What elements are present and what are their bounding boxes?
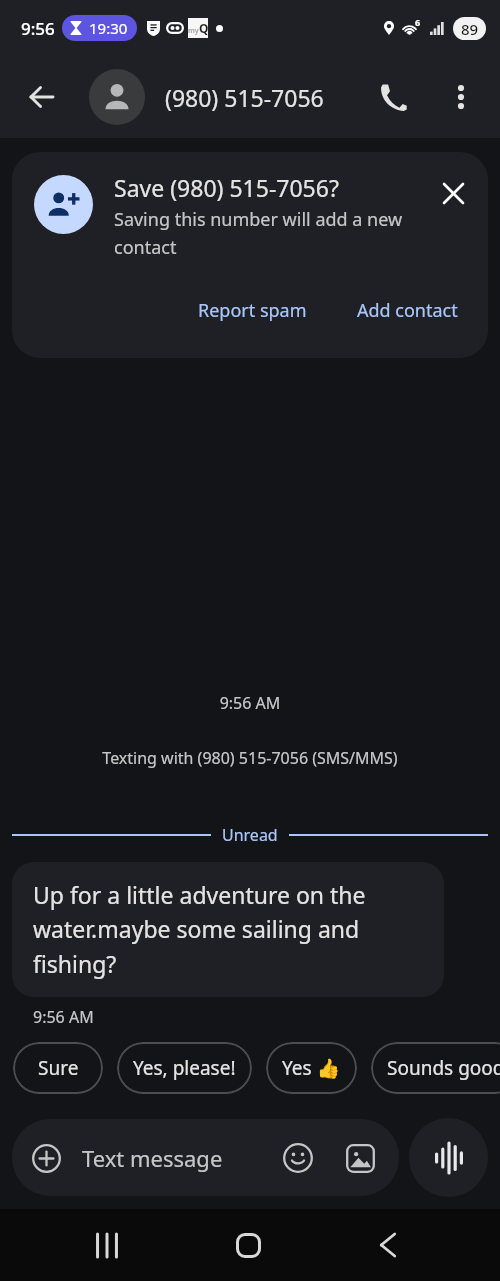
staticText: Saving this number will add a new contac… (114, 207, 428, 259)
button[interactable]: Emoji (277, 1137, 319, 1179)
button[interactable]: Call (369, 73, 417, 121)
button[interactable]: Sounds good (371, 1042, 500, 1094)
button[interactable]: Yes 👍 (266, 1042, 357, 1094)
staticText: Texting with (980) 515-7056 (SMS/MMS) (0, 747, 500, 769)
button[interactable]: Save (980) 515-7056? (12, 152, 488, 358)
button[interactable]: Back (352, 1209, 424, 1281)
staticText: my (188, 26, 199, 36)
staticText: 9:56 AM (0, 692, 500, 714)
button[interactable]: Contact avatar (89, 69, 145, 125)
staticText: Save (980) 515-7056? (114, 172, 339, 203)
button[interactable]: Yes, please! (117, 1042, 252, 1094)
button[interactable]: Attach (26, 1138, 66, 1178)
button[interactable]: Up for a little adventure on the water.m… (12, 862, 444, 997)
button[interactable]: Sure (13, 1042, 103, 1094)
staticText: Unread (222, 824, 278, 846)
staticText: Yes 👍 (282, 1055, 341, 1081)
button[interactable]: Add contact (349, 292, 466, 329)
button[interactable]: Dismiss (434, 174, 472, 212)
staticText: Report spam (198, 298, 307, 323)
staticText: Yes, please! (133, 1055, 236, 1081)
button[interactable]: Home (212, 1209, 284, 1281)
button[interactable]: Voice message (409, 1118, 488, 1197)
button[interactable]: More options (439, 75, 483, 119)
staticText: Add contact (357, 298, 458, 323)
staticText: Sounds good (387, 1055, 500, 1081)
button[interactable]: Gallery (339, 1137, 381, 1179)
staticText: 9:56 (21, 17, 55, 40)
button[interactable]: Attach (12, 1119, 399, 1196)
staticText: Sure (38, 1055, 79, 1081)
button[interactable]: Recent apps (71, 1209, 143, 1281)
staticText: Up for a little adventure on the water.m… (33, 879, 423, 980)
staticText: (980) 515-7056 (165, 82, 369, 113)
staticText: Text message (82, 1143, 277, 1173)
staticText: 89 (461, 19, 479, 39)
staticText: 9:56 AM (33, 1006, 94, 1028)
staticText: 6 (415, 16, 421, 28)
button[interactable]: Report spam (190, 292, 315, 329)
button[interactable]: Back (18, 73, 66, 121)
staticText: Q (199, 20, 208, 36)
staticText: 19:30 (89, 18, 128, 38)
